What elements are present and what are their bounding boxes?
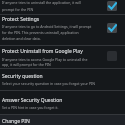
staticText: app, it will prompt for the PIN [2,62,51,67]
button[interactable]: Protect Uninstall from Google Play [0,46,125,68]
staticText: Security question [2,73,43,80]
staticText: Set a PIN hint in case you forget it. [2,105,59,110]
button[interactable]: Protect Settings [0,15,125,45]
staticText: Change PIN [2,118,30,125]
staticText: deletion and clear data. [2,36,41,41]
button[interactable]: If anyone tries to uninstall the applica… [0,0,125,14]
button[interactable] [107,23,117,33]
staticText: If anyone tries to uninstall the applica… [2,0,81,5]
button[interactable]: Change PIN [0,115,125,125]
button[interactable] [107,1,117,11]
staticText: If anyone tries to access Google Play to… [2,57,88,62]
staticText: Protect Settings [2,16,40,23]
staticText: Select your security question in case yo… [2,81,95,86]
staticText: If anyone tries to go to Android Setting… [2,24,92,29]
button[interactable]: Answer Security Question [0,91,125,114]
staticText: prompt for the PIN [2,7,34,12]
staticText: Answer Security Question [2,97,63,104]
button[interactable]: Security question [0,69,125,90]
staticText: Protect Uninstall from Google Play [2,48,83,55]
staticText: for the PIN. This prevents uninstall, ap… [2,30,79,35]
